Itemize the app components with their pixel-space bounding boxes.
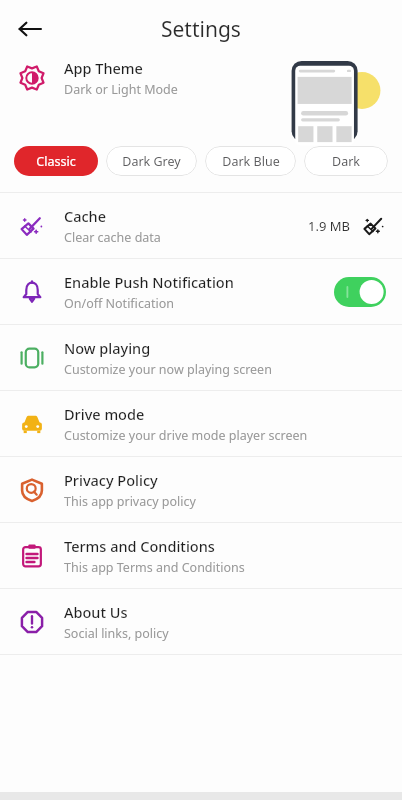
button[interactable]: Dark Grey [106, 146, 197, 176]
staticText: Dark [332, 153, 360, 170]
button[interactable]: Dark [304, 146, 388, 176]
staticText: 1.9 MB [308, 217, 350, 235]
staticText: Social links, policy [64, 625, 169, 642]
staticText: Clear cache data [64, 229, 161, 246]
button[interactable]: Dark Blue [205, 146, 296, 176]
staticText: Drive mode [64, 404, 145, 424]
staticText: Dark or Light Mode [64, 81, 178, 98]
staticText: This app Terms and Conditions [64, 559, 245, 576]
button[interactable]: Now playing [0, 325, 402, 390]
staticText: Now playing [64, 338, 151, 358]
staticText: Customize your drive mode player screen [64, 427, 308, 444]
button[interactable]: Back [6, 5, 54, 53]
staticText: Enable Push Notification [64, 272, 234, 292]
staticText: Dark Grey [122, 153, 181, 170]
button[interactable]: Privacy Policy [0, 457, 402, 522]
button[interactable]: Terms and Conditions [0, 523, 402, 588]
button[interactable]: Enable Push Notification [0, 259, 402, 324]
staticText: Privacy Policy [64, 470, 158, 490]
button[interactable]: About Us [0, 589, 402, 654]
button[interactable]: Drive mode [0, 391, 402, 456]
staticText: On/off Notification [64, 295, 174, 312]
staticText: This app privacy policy [64, 493, 196, 510]
staticText: Customize your now playing screen [64, 361, 272, 378]
staticText: Cache [64, 206, 107, 226]
staticText: App Theme [64, 58, 143, 78]
button[interactable]: Push notification toggle [334, 277, 386, 307]
staticText: Dark Blue [222, 153, 280, 170]
button[interactable]: Classic [14, 146, 98, 176]
staticText: About Us [64, 602, 128, 622]
staticText: Settings [161, 15, 241, 44]
staticText: Terms and Conditions [64, 536, 215, 556]
staticText: Classic [36, 153, 76, 170]
button[interactable]: Cache [0, 193, 402, 258]
